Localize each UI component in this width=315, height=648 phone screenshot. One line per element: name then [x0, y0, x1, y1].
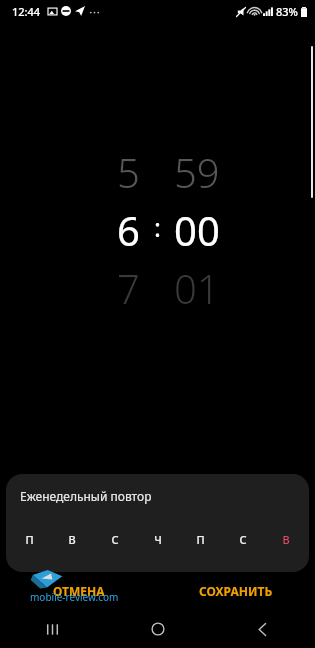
staticText: С: [239, 532, 247, 547]
staticText: Ч: [154, 532, 162, 547]
button[interactable]: 6: [0, 203, 315, 249]
staticText: mobile-review.com: [30, 590, 119, 604]
button[interactable]: В: [59, 526, 85, 552]
staticText: П: [25, 532, 34, 547]
staticText: 6: [117, 203, 140, 249]
button[interactable]: П: [187, 526, 213, 552]
staticText: Еженедельный повтор: [20, 488, 152, 504]
staticText: С: [111, 532, 119, 547]
staticText: В: [68, 532, 76, 547]
staticText: 01: [174, 261, 220, 307]
staticText: :: [154, 209, 161, 244]
button[interactable]: Еженедельный повтор: [6, 474, 309, 572]
button[interactable]: Home: [105, 610, 210, 648]
staticText: 5: [117, 145, 140, 191]
button[interactable]: 5: [0, 145, 315, 191]
staticText: 12:44: [12, 4, 41, 19]
button[interactable]: П: [16, 526, 42, 552]
button[interactable]: Back: [210, 610, 315, 648]
button[interactable]: 7: [0, 261, 315, 307]
staticText: 7: [117, 261, 140, 307]
button[interactable]: ОТМЕНА: [0, 572, 157, 610]
staticText: 59: [174, 145, 220, 191]
button[interactable]: Recent apps: [0, 610, 105, 648]
staticText: П: [196, 532, 205, 547]
button[interactable]: С: [230, 526, 256, 552]
button[interactable]: С: [102, 526, 128, 552]
button[interactable]: Ч: [145, 526, 171, 552]
staticText: ОТМЕНА: [53, 583, 105, 599]
button[interactable]: В: [273, 526, 299, 552]
button[interactable]: СОХРАНИТЬ: [157, 572, 315, 610]
staticText: 83%: [276, 4, 298, 19]
staticText: 00: [174, 203, 220, 249]
staticText: В: [282, 532, 290, 547]
staticText: СОХРАНИТЬ: [199, 583, 273, 599]
